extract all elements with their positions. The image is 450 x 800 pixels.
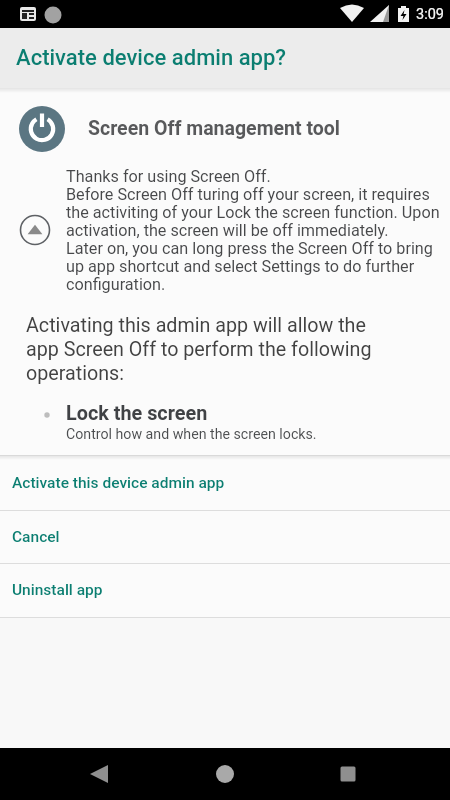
button[interactable]: Uninstall app <box>0 563 450 617</box>
button[interactable] <box>19 214 51 246</box>
button[interactable] <box>334 760 362 788</box>
staticText: Control how and when the screen locks. <box>66 426 317 443</box>
button[interactable]: Cancel <box>0 510 450 564</box>
staticText: Thanks for using Screen Off. Before Scre… <box>66 167 440 294</box>
staticText: 3:09 <box>416 6 444 23</box>
button[interactable]: Activate this device admin app <box>0 456 450 510</box>
staticText: Activate device admin app? <box>16 45 287 71</box>
staticText: Activate this device admin app <box>12 474 225 492</box>
staticText: Activating this admin app will allow the… <box>26 314 372 385</box>
button[interactable] <box>211 760 239 788</box>
staticText: Screen Off management tool <box>88 117 340 140</box>
staticText: Lock the screen <box>66 402 208 425</box>
staticText: Cancel <box>12 528 60 546</box>
staticText: Uninstall app <box>12 581 103 599</box>
button[interactable] <box>84 765 114 783</box>
